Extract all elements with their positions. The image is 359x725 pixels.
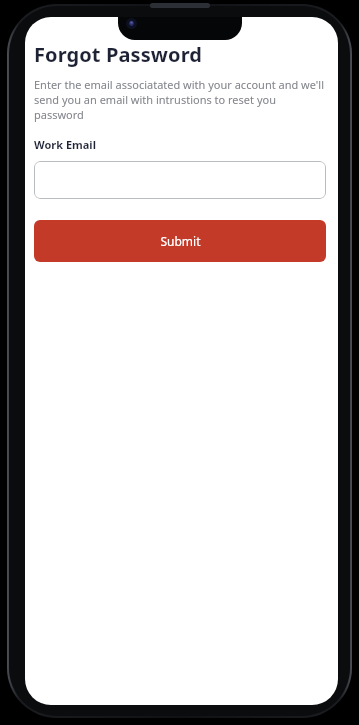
- button[interactable]: Submit: [34, 220, 326, 262]
- staticText: Enter the email associatated with your a…: [34, 77, 326, 122]
- staticText: Work Email: [34, 137, 96, 152]
- staticText: Forgot Password: [34, 41, 203, 68]
- button[interactable]: Work Email input field: [34, 161, 326, 199]
- staticText: Submit: [160, 233, 201, 249]
